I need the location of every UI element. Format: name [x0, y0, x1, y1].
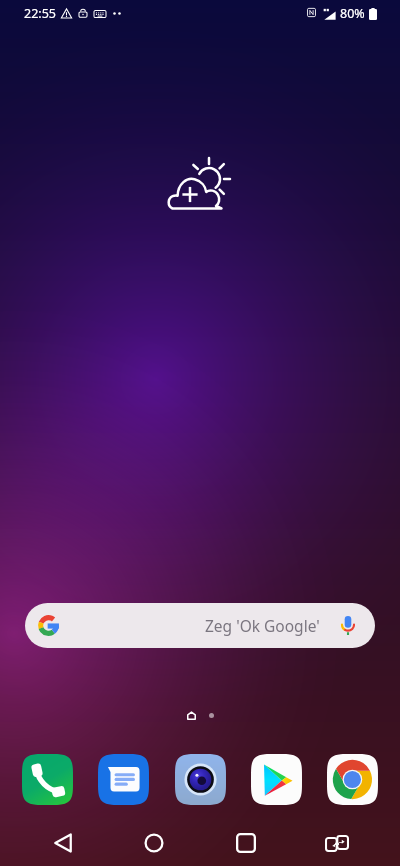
button[interactable]: Messages: [98, 754, 149, 805]
button[interactable]: Chrome: [327, 754, 378, 805]
staticText: 22:55: [24, 5, 56, 22]
button[interactable]: Camera: [175, 754, 226, 805]
button[interactable]: Split screen: [309, 825, 365, 861]
button[interactable]: Recents: [218, 825, 274, 861]
button[interactable]: Add weather widget: [167, 157, 233, 212]
staticText: 80%: [340, 5, 365, 22]
button[interactable]: Phone: [22, 754, 73, 805]
button[interactable]: Home: [126, 825, 182, 861]
button[interactable]: Play Store: [251, 754, 302, 805]
button[interactable]: Back: [35, 825, 91, 861]
button[interactable]: Zeg 'Ok Google': [25, 603, 375, 648]
staticText: Zeg 'Ok Google': [205, 615, 320, 636]
